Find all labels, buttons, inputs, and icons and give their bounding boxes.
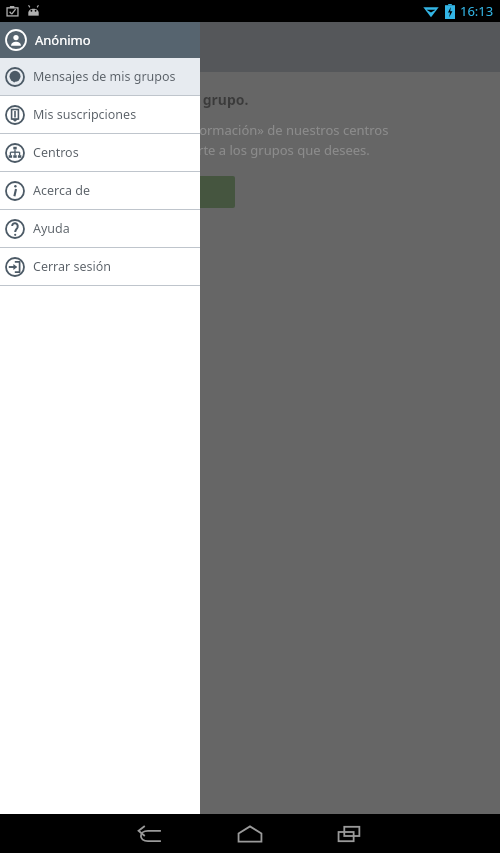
staticText: Centros: [33, 144, 79, 161]
button[interactable]: Mensajes de mis grupos: [0, 58, 200, 95]
staticText: Ayuda: [33, 220, 70, 237]
staticText: Acerca de: [33, 182, 90, 199]
staticText: salesianos: [14, 29, 154, 66]
staticText: educativos. Antes que suscribirte a los …: [14, 141, 370, 159]
button[interactable]: Anónimo: [0, 22, 200, 58]
button[interactable]: Home: [200, 814, 300, 853]
button[interactable]: Ayuda: [0, 210, 200, 247]
button[interactable]: Añadir suscripciones: [14, 176, 235, 208]
staticText: No estás suscrito a ningún grupo.: [14, 90, 249, 109]
button[interactable]: Acerca de: [0, 172, 200, 209]
staticText: Cerrar sesión: [33, 258, 111, 275]
button[interactable]: Cerrar sesión: [0, 248, 200, 285]
staticText: Recibe «noticias» y toda la «información…: [14, 121, 389, 139]
button[interactable]: Back: [100, 814, 200, 853]
staticText: Anónimo: [35, 31, 91, 49]
staticText: 16:13: [460, 2, 494, 20]
staticText: Mis suscripciones: [33, 106, 137, 123]
button[interactable]: Centros: [0, 134, 200, 171]
button[interactable]: Recent apps: [300, 814, 400, 853]
staticText: Mensajes de mis grupos: [33, 68, 176, 85]
button[interactable]: Mis suscripciones: [0, 96, 200, 133]
staticText: Añadir suscripciones: [57, 183, 193, 202]
